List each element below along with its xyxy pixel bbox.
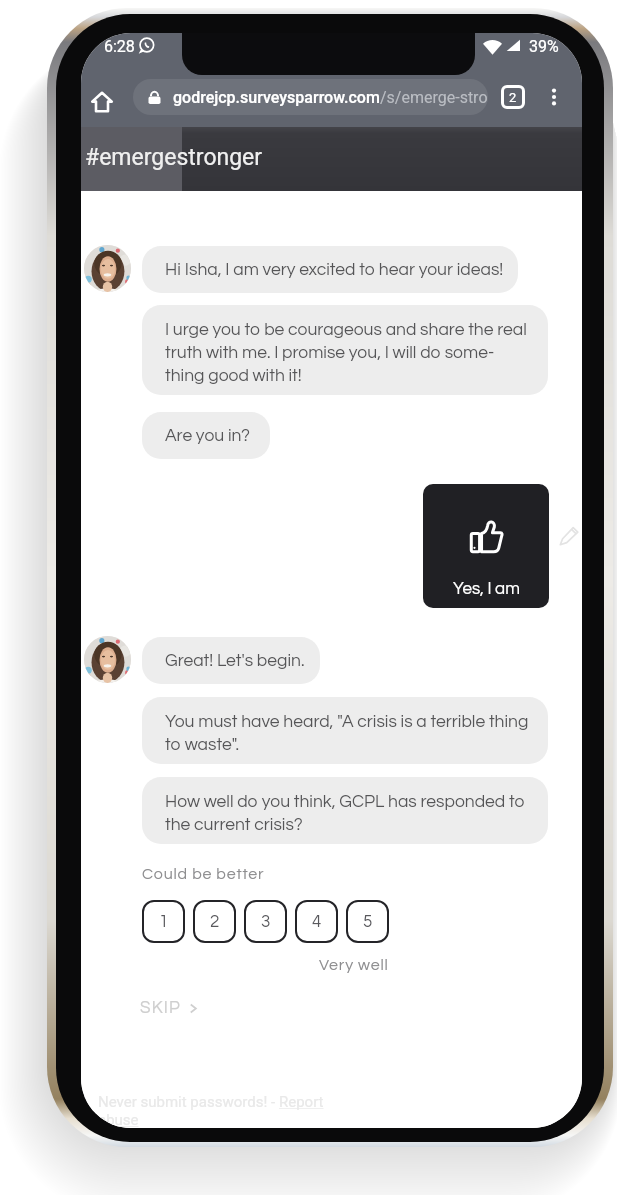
button[interactable]: Great! Let's begin.	[142, 637, 320, 684]
staticText: Great! Let's begin.	[165, 652, 305, 670]
button[interactable]: Yes, I am	[423, 484, 549, 608]
staticText: 2	[509, 90, 517, 105]
button[interactable]: How well do you think, GCPL has responde…	[142, 777, 548, 844]
staticText: 4	[312, 913, 322, 931]
staticText: Yes, I am	[453, 580, 520, 598]
staticText: How well do you think, GCPL has responde…	[165, 793, 534, 834]
staticText: 6:28	[104, 37, 135, 56]
staticText: 3	[261, 913, 271, 931]
button[interactable]: Open tabs	[495, 79, 531, 115]
staticText: Hi Isha, I am very excited to hear your …	[165, 261, 504, 279]
button[interactable]: 3	[244, 900, 287, 943]
staticText: /s/emerge-stro	[380, 88, 488, 107]
button[interactable]: Report	[279, 1093, 324, 1111]
staticText: Never submit passwords! -	[98, 1093, 279, 1111]
button[interactable]: 5	[346, 900, 389, 943]
staticText: Are you in?	[165, 427, 251, 445]
button[interactable]: abuse	[98, 1111, 139, 1128]
staticText: Could be better	[142, 866, 265, 882]
staticText: You must have heard, "A crisis is a terr…	[165, 713, 534, 754]
button[interactable]: You must have heard, "A crisis is a terr…	[142, 697, 548, 764]
staticText: 5	[363, 913, 373, 931]
button[interactable]: 4	[295, 900, 338, 943]
button[interactable]: SKIP	[140, 999, 199, 1017]
button[interactable]: 2	[193, 900, 236, 943]
button[interactable]: Edit answer	[558, 524, 581, 547]
button[interactable]: Are you in?	[142, 412, 270, 459]
button[interactable]: More options	[536, 79, 572, 115]
button[interactable]: godrejcp.surveysparrow.com	[133, 79, 488, 115]
staticText: Very well	[319, 957, 389, 973]
button[interactable]: Home	[81, 81, 123, 123]
staticText: SKIP	[140, 999, 181, 1017]
staticText: 1	[159, 913, 169, 931]
button[interactable]: 1	[142, 900, 185, 943]
button[interactable]: Hi Isha, I am very excited to hear your …	[142, 246, 518, 293]
staticText: #emergestronger	[85, 144, 263, 171]
staticText: 2	[210, 913, 220, 931]
staticText: 39%	[529, 37, 559, 56]
button[interactable]: I urge you to be courageous and share th…	[142, 305, 548, 395]
staticText: I urge you to be courageous and share th…	[165, 321, 527, 385]
staticText: godrejcp.surveysparrow.com	[173, 88, 380, 107]
